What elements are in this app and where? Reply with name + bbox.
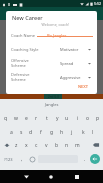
button[interactable]: .: [81, 154, 89, 164]
button[interactable]: x: [23, 141, 29, 149]
staticText: y: [56, 115, 59, 122]
staticText: 0: [8, 2, 11, 7]
staticText: Spread: [60, 61, 74, 66]
staticText: x: [25, 142, 28, 149]
staticText: .: [84, 156, 86, 163]
staticText: h: [60, 129, 64, 136]
staticText: Motivator: [60, 47, 79, 52]
button[interactable]: f: [38, 128, 44, 136]
button[interactable]: Coaching Style: [11, 44, 92, 54]
button[interactable]: ,: [18, 154, 26, 164]
button[interactable]: Offensive Scheme: [11, 58, 92, 68]
staticText: e: [25, 115, 28, 122]
staticText: Jangles: [45, 102, 59, 107]
button[interactable]: o: [85, 114, 91, 122]
staticText: v: [45, 142, 48, 149]
staticText: n: [65, 142, 69, 149]
staticText: Bo Jangles: [47, 33, 67, 38]
staticText: b: [55, 142, 59, 149]
staticText: a: [10, 129, 13, 136]
button[interactable]: m: [74, 141, 80, 149]
staticText: s: [20, 129, 23, 136]
staticText: o: [86, 115, 90, 122]
staticText: ?123: [4, 157, 13, 162]
button[interactable]: Shift: [3, 141, 11, 149]
button[interactable]: a: [8, 128, 14, 136]
button[interactable]: Back: [21, 172, 31, 182]
button[interactable]: k: [80, 128, 86, 136]
button[interactable]: l: [90, 128, 96, 136]
button[interactable]: u: [64, 114, 70, 122]
staticText: Defensive Scheme: [11, 72, 42, 82]
button[interactable]: Recents: [72, 172, 82, 182]
staticText: z: [15, 142, 18, 149]
staticText: d: [29, 129, 33, 136]
staticText: c: [35, 142, 38, 149]
staticText: Coach Name: [11, 33, 35, 38]
staticText: w: [14, 115, 18, 122]
button[interactable]: w: [13, 114, 19, 122]
button[interactable]: Home: [46, 172, 56, 182]
staticText: r: [35, 115, 38, 122]
button[interactable]: g: [49, 128, 55, 136]
button[interactable]: Emoji: [28, 154, 36, 164]
button[interactable]: NEXT: [76, 83, 91, 90]
button[interactable]: v: [43, 141, 49, 149]
button[interactable]: e: [23, 114, 29, 122]
button[interactable]: h: [59, 128, 65, 136]
button[interactable]: Defensive Scheme: [11, 72, 92, 82]
staticText: f: [40, 129, 42, 136]
staticText: 5:52: [94, 1, 101, 6]
button[interactable]: r: [33, 114, 39, 122]
button[interactable]: z: [13, 141, 19, 149]
button[interactable]: s: [18, 128, 24, 136]
staticText: Welcome, coach!: [6, 22, 69, 27]
button[interactable]: d: [28, 128, 34, 136]
staticText: 2nd & 8: [48, 95, 59, 99]
button[interactable]: j: [69, 128, 75, 136]
staticText: Coaching Style: [11, 47, 39, 52]
button[interactable]: q: [3, 114, 9, 122]
staticText: g: [50, 129, 54, 136]
button[interactable]: n: [64, 141, 70, 149]
staticText: u: [65, 115, 69, 122]
button[interactable]: i: [75, 114, 81, 122]
staticText: NEXT: [78, 84, 89, 89]
button[interactable]: t: [44, 114, 50, 122]
staticText: q: [4, 115, 8, 122]
button[interactable]: Coach Name: [11, 30, 92, 40]
button[interactable]: Enter: [90, 154, 100, 164]
staticText: m: [75, 142, 80, 149]
button[interactable]: ?123: [2, 154, 15, 164]
staticText: i: [77, 115, 79, 122]
staticText: t: [46, 115, 48, 122]
staticText: Aggressive: [60, 75, 81, 80]
staticText: k: [82, 129, 85, 136]
button[interactable]: Backspace: [92, 141, 100, 149]
staticText: ,: [21, 156, 23, 163]
staticText: p: [96, 115, 100, 122]
button[interactable]: y: [54, 114, 60, 122]
button[interactable]: p: [95, 114, 101, 122]
staticText: j: [71, 129, 73, 136]
button[interactable]: b: [54, 141, 60, 149]
button[interactable]: c: [33, 141, 39, 149]
staticText: l: [92, 129, 94, 136]
staticText: Offensive Scheme: [11, 58, 42, 68]
staticText: New Career: [12, 14, 43, 21]
